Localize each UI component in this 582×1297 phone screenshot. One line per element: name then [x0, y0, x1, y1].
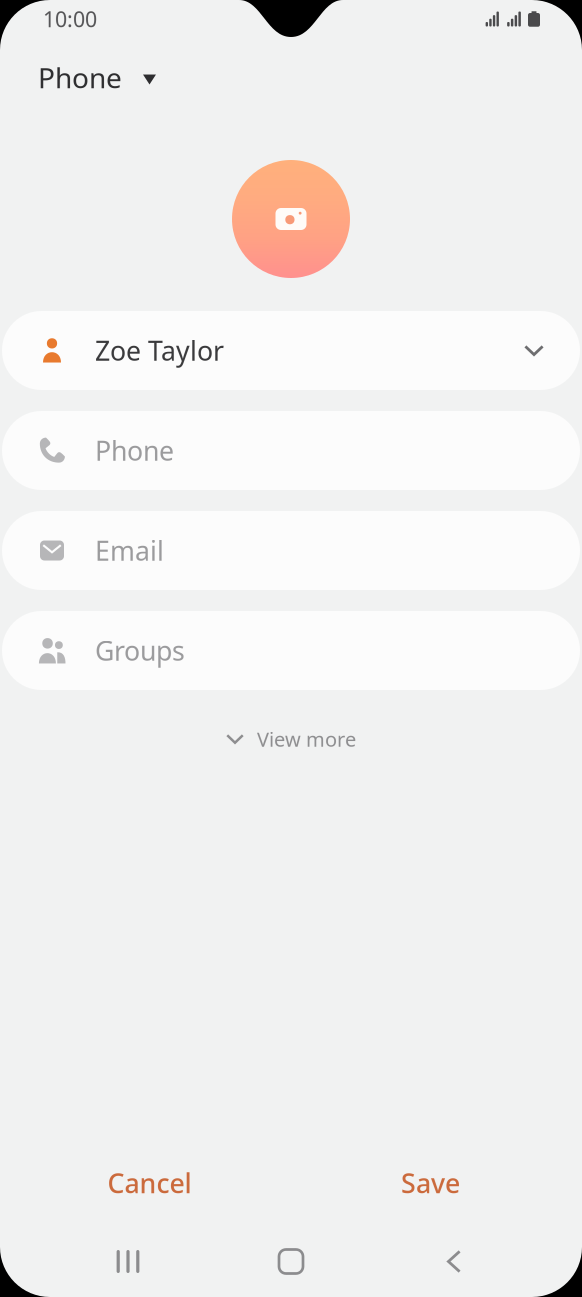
button[interactable]: Groups — [2, 611, 580, 690]
button[interactable]: Save — [292, 1154, 569, 1212]
staticText: View more — [257, 726, 356, 752]
staticText: 10:00 — [43, 5, 97, 33]
button[interactable]: Email — [2, 511, 580, 590]
staticText: Cancel — [107, 1165, 191, 1201]
staticText: Groups — [95, 633, 185, 668]
staticText: Zoe Taylor — [95, 333, 224, 368]
button[interactable]: Add photo — [232, 160, 350, 278]
staticText: Email — [95, 533, 164, 568]
staticText: Phone — [95, 433, 174, 468]
button[interactable]: Home — [209, 1226, 372, 1297]
button[interactable]: View more — [0, 713, 582, 765]
staticText: Phone — [38, 59, 122, 96]
button[interactable]: Zoe Taylor — [2, 311, 580, 390]
button[interactable]: Back — [372, 1226, 535, 1297]
button[interactable]: Phone — [2, 411, 580, 490]
button[interactable]: Recent apps — [46, 1226, 209, 1297]
button[interactable]: Cancel — [7, 1154, 292, 1212]
staticText: Save — [401, 1165, 460, 1201]
button[interactable]: Phone — [0, 38, 582, 117]
